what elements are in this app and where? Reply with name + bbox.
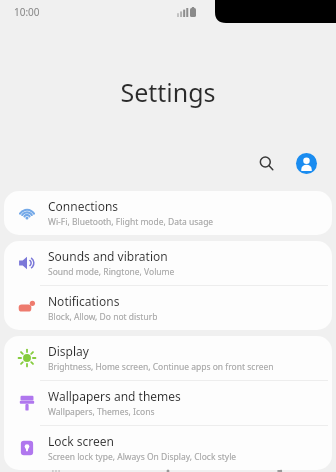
staticText: Display bbox=[48, 343, 89, 359]
staticText: Wallpapers, Themes, Icons bbox=[48, 406, 155, 418]
staticText: Settings bbox=[0, 75, 336, 109]
button[interactable]: Display bbox=[4, 336, 332, 380]
staticText: 10:00 bbox=[14, 5, 40, 19]
button[interactable]: Account bbox=[290, 147, 322, 179]
staticText: Sounds and vibration bbox=[48, 248, 168, 264]
button[interactable]: Recents bbox=[0, 470, 112, 472]
button[interactable]: Sounds and vibration bbox=[4, 241, 332, 285]
staticText: Block, Allow, Do not disturb bbox=[48, 311, 158, 323]
staticText: Brightness, Home screen, Continue apps o… bbox=[48, 361, 274, 373]
button[interactable]: Notifications bbox=[4, 286, 332, 330]
staticText: Screen lock type, Always On Display, Clo… bbox=[48, 451, 237, 463]
staticText: Notifications bbox=[48, 293, 120, 309]
button[interactable]: Wallpapers and themes bbox=[4, 381, 332, 425]
staticText: Wallpapers and themes bbox=[48, 388, 181, 404]
staticText: Sound mode, Ringtone, Volume bbox=[48, 266, 175, 278]
button[interactable]: Home bbox=[112, 470, 224, 472]
staticText: Wi-Fi, Bluetooth, Flight mode, Data usag… bbox=[48, 216, 214, 228]
button[interactable]: Search bbox=[250, 147, 282, 179]
staticText: Lock screen bbox=[48, 433, 115, 449]
staticText: Connections bbox=[48, 198, 119, 214]
button[interactable]: Connections bbox=[4, 191, 332, 235]
button[interactable]: Lock screen bbox=[4, 426, 332, 470]
button[interactable]: Back bbox=[224, 470, 336, 472]
